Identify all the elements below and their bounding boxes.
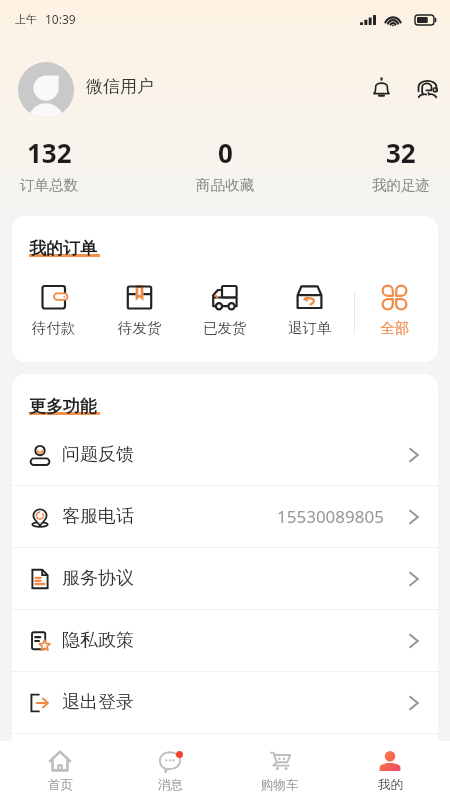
staticText: 退订单: [288, 319, 332, 337]
button[interactable]: 购物车: [225, 748, 335, 793]
staticText: 待付款: [32, 319, 76, 337]
button[interactable]: 待付款: [12, 284, 97, 337]
button[interactable]: 隐私政策: [12, 610, 438, 671]
staticText: 客服电话: [62, 505, 134, 528]
staticText: 订单总数: [20, 176, 78, 194]
button[interactable]: 问题反馈: [12, 424, 438, 485]
button[interactable]: 待发货: [97, 284, 182, 337]
button[interactable]: 退订单: [267, 284, 352, 337]
button[interactable]: 已发货: [182, 284, 267, 337]
staticText: 问题反馈: [62, 443, 134, 466]
staticText: 服务协议: [62, 567, 134, 590]
button[interactable]: 消息: [115, 748, 225, 793]
staticText: 待发货: [118, 319, 162, 337]
button[interactable]: Customer service: [411, 71, 444, 104]
button[interactable]: 退出登录: [12, 672, 438, 733]
staticText: 我的: [378, 777, 403, 793]
staticText: 132: [27, 135, 72, 170]
staticText: 我的足迹: [372, 176, 430, 194]
button[interactable]: 服务协议: [12, 548, 438, 609]
staticText: 购物车: [261, 777, 299, 793]
staticText: 微信用户: [86, 76, 154, 97]
staticText: 商品收藏: [196, 176, 254, 194]
staticText: 更多功能: [29, 396, 97, 417]
staticText: 消息: [158, 777, 183, 793]
button[interactable]: Notifications: [365, 71, 398, 104]
button[interactable]: 我的: [335, 748, 445, 793]
staticText: 上午: [15, 12, 37, 26]
staticText: 10:39: [45, 11, 76, 27]
button[interactable]: 全部: [352, 284, 437, 337]
staticText: 我的订单: [29, 238, 97, 259]
staticText: 32: [386, 135, 416, 170]
button[interactable]: 0: [196, 126, 254, 194]
button[interactable]: 32: [372, 126, 430, 194]
staticText: 隐私政策: [62, 629, 134, 652]
button[interactable]: Avatar: [18, 62, 74, 118]
staticText: 首页: [48, 777, 73, 793]
staticText: 0: [218, 135, 233, 170]
staticText: 退出登录: [62, 691, 134, 714]
staticText: 15530089805: [277, 505, 384, 528]
staticText: 已发货: [203, 319, 247, 337]
button[interactable]: 客服电话: [12, 486, 438, 547]
button[interactable]: 首页: [5, 748, 115, 793]
staticText: 全部: [380, 319, 409, 337]
button[interactable]: 132: [20, 126, 78, 194]
